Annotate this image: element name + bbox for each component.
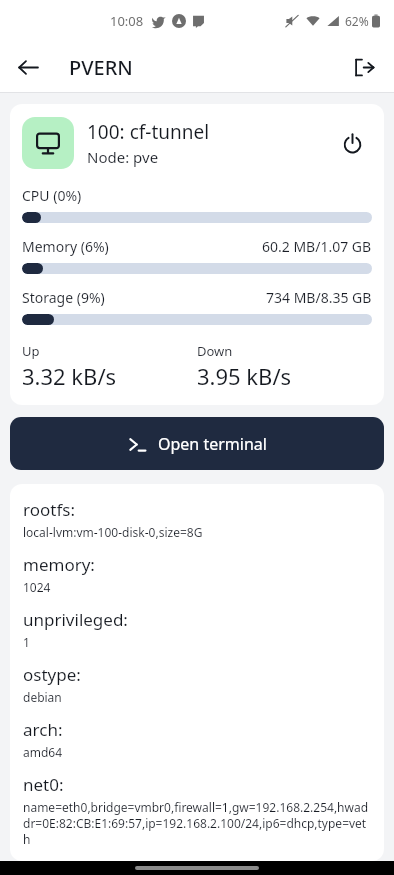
button[interactable]: rootfs: — [10, 484, 384, 861]
staticText: 1 — [23, 634, 30, 650]
staticText: 734 MB/8.35 GB — [266, 288, 372, 307]
staticText: local-lvm:vm-100-disk-0,size=8G — [23, 524, 203, 540]
button[interactable]: Back — [8, 47, 48, 87]
staticText: memory: — [23, 553, 95, 576]
button[interactable]: Log out — [344, 47, 384, 87]
staticText: arch: — [23, 718, 63, 741]
staticText: 62% — [345, 13, 369, 29]
staticText: name=eth0,bridge=vmbr0,firewall=1,gw=192… — [23, 799, 371, 847]
staticText: unprivileged: — [23, 608, 128, 631]
button[interactable]: Power — [332, 123, 372, 163]
staticText: PVERN — [69, 54, 133, 81]
staticText: amd64 — [23, 744, 63, 760]
staticText: Open terminal — [158, 433, 267, 455]
staticText: rootfs: — [23, 498, 75, 521]
staticText: Node: pve — [87, 147, 159, 167]
staticText: debian — [23, 689, 62, 705]
staticText: Memory (6%) — [22, 237, 109, 256]
staticText: Down — [197, 342, 233, 360]
staticText: net0: — [23, 773, 64, 796]
staticText: CPU (0%) — [22, 186, 82, 205]
staticText: 3.32 kB/s — [22, 361, 117, 391]
staticText: 3.95 kB/s — [197, 361, 292, 391]
button[interactable]: Open terminal — [10, 417, 384, 470]
button[interactable]: 100: cf-tunnel — [10, 104, 384, 405]
staticText: Storage (9%) — [22, 288, 105, 307]
staticText: Up — [22, 342, 40, 360]
staticText: 10:08 — [110, 12, 144, 30]
staticText: 1024 — [23, 579, 51, 595]
staticText: ostype: — [23, 663, 81, 686]
staticText: 100: cf-tunnel — [87, 119, 210, 145]
staticText: 60.2 MB/1.07 GB — [262, 237, 372, 256]
